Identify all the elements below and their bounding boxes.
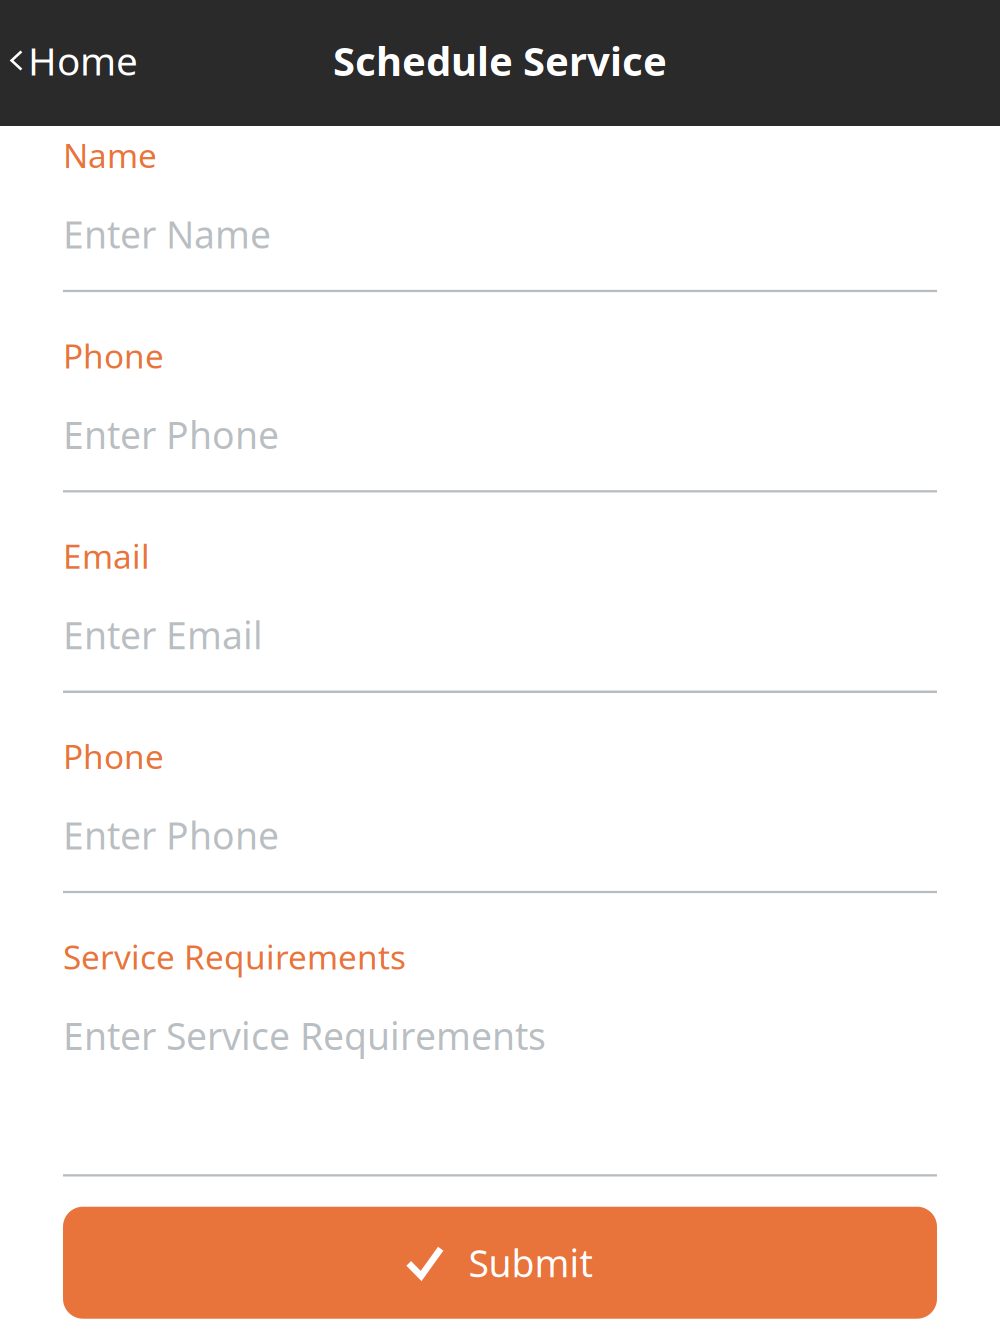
staticText: Service Requirements [63,934,406,979]
button[interactable]: Phone [63,292,937,493]
staticText: Name [63,133,157,177]
button[interactable]: Submit [63,1207,937,1319]
button[interactable]: Service Requirements [63,893,937,1177]
staticText: Phone [63,734,164,778]
button[interactable]: Phone [63,693,937,893]
staticText: Enter Phone [63,810,279,860]
staticText: Schedule Service [333,34,667,87]
staticText: Submit [468,1238,592,1287]
staticText: Enter Name [63,209,271,259]
staticText: Enter Phone [63,410,279,459]
staticText: Enter Service Requirements [63,1011,546,1060]
staticText: Phone [63,333,164,378]
button[interactable]: Back to Home [0,23,152,103]
staticText: Enter Email [63,610,263,659]
button[interactable]: Email [63,493,937,693]
staticText: Home [28,35,138,86]
button[interactable]: Name [63,126,937,292]
staticText: Email [63,534,150,578]
